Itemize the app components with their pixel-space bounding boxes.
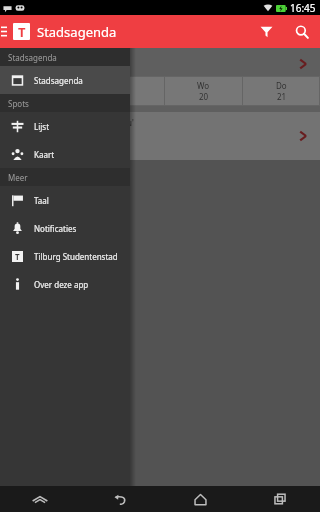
button[interactable]: Pushaven | 'Aanrijding in Moscou': [0, 112, 320, 160]
staticText: Lijst: [34, 121, 50, 132]
staticText: Ma: [43, 80, 55, 91]
button[interactable]: Taal: [0, 186, 130, 214]
button[interactable]: T: [0, 242, 130, 270]
staticText: T: [18, 23, 26, 40]
button[interactable]: Back: [80, 486, 160, 512]
staticText: augustus: [18, 54, 84, 74]
button[interactable]: Search: [284, 15, 320, 48]
staticText: Meer: [8, 172, 28, 183]
button[interactable]: Over deze app: [0, 270, 130, 298]
button[interactable]: Di: [88, 76, 164, 106]
staticText: -01:00: [6, 145, 30, 156]
staticText: Stadsagenda: [37, 23, 117, 41]
staticText: Kaart: [34, 149, 55, 160]
button[interactable]: Lijst: [0, 112, 130, 140]
staticText: 21: [277, 91, 287, 102]
button[interactable]: Home: [160, 486, 240, 512]
staticText: Over deze app: [34, 279, 89, 290]
button[interactable]: Filter: [248, 15, 284, 48]
staticText: Tilburg Studentenstad: [34, 251, 118, 262]
staticText: Taal: [34, 195, 49, 206]
button[interactable]: Ma: [11, 76, 87, 106]
button[interactable]: Recent apps: [240, 486, 320, 512]
staticText: Stadsagenda: [34, 75, 83, 86]
staticText: Notificaties: [34, 223, 77, 234]
staticText: Pushaven | 'Aanrijding in Moscou': [6, 117, 134, 128]
staticText: T: [15, 251, 20, 262]
staticText: Wo: [197, 80, 210, 91]
button[interactable]: Notificaties: [0, 214, 130, 242]
button[interactable]: Stadsagenda: [0, 66, 130, 94]
staticText: 16:45: [290, 1, 316, 15]
staticText: 19: [121, 91, 131, 102]
staticText: Stadsagenda: [8, 52, 57, 63]
staticText: Do: [276, 80, 287, 91]
button[interactable]: Open navigation drawer: [0, 15, 8, 48]
staticText: Spots: [8, 98, 29, 109]
button[interactable]: Do: [243, 76, 320, 106]
staticText: 18: [44, 91, 54, 102]
staticText: 20: [199, 91, 209, 102]
button[interactable]: Menu: [0, 486, 80, 512]
button[interactable]: Wo: [165, 76, 242, 106]
button[interactable]: Kaart: [0, 140, 130, 168]
